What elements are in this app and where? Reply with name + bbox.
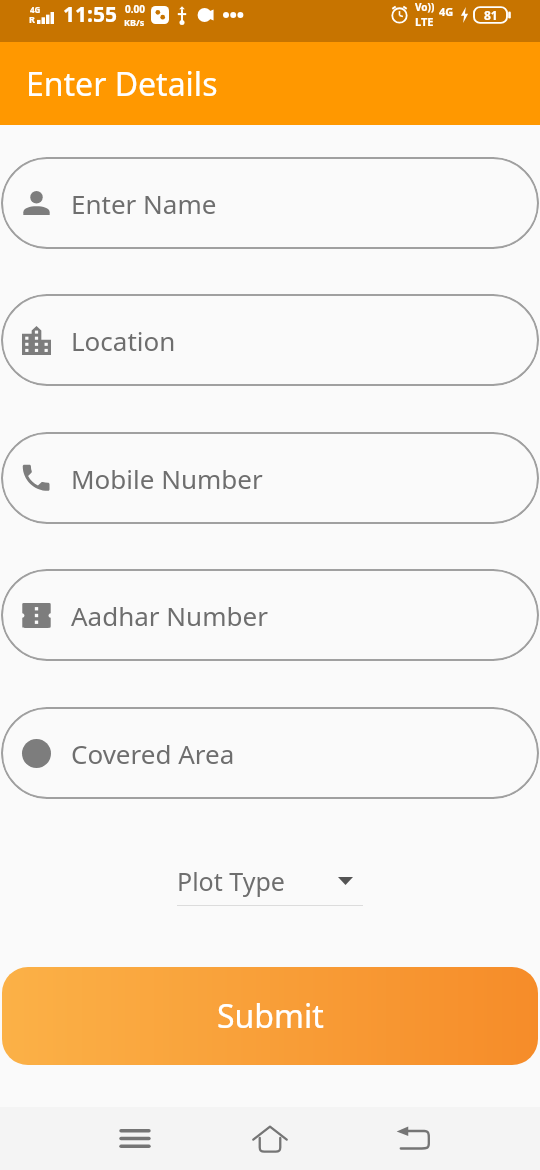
staticText: 81 (484, 7, 498, 23)
button[interactable]: Location (1, 294, 539, 386)
staticText: 11:55 (63, 0, 117, 29)
button[interactable]: Aadhar Number (1, 569, 539, 661)
staticText: Mobile Number (71, 461, 263, 496)
staticText: R (29, 13, 35, 25)
staticText: 0.00 (125, 2, 145, 16)
button[interactable]: Covered Area (1, 707, 539, 799)
staticText: Plot Type (177, 864, 285, 898)
staticText: Covered Area (71, 736, 235, 771)
button[interactable]: Submit (2, 967, 538, 1065)
staticText: Enter Name (71, 186, 217, 221)
staticText: KB/s (124, 16, 145, 28)
button[interactable]: Mobile Number (1, 432, 539, 524)
staticText: 4G (30, 4, 41, 15)
button[interactable]: Back (373, 1107, 453, 1170)
button[interactable]: Recent apps (95, 1107, 175, 1170)
staticText: LTE (415, 14, 434, 29)
button[interactable]: Home (230, 1107, 310, 1170)
button[interactable]: Plot Type (177, 856, 363, 906)
staticText: Submit (217, 994, 324, 1038)
staticText: Enter Details (26, 62, 218, 106)
button[interactable]: Enter Name (1, 157, 539, 249)
staticText: Vo)) (415, 0, 435, 14)
staticText: Aadhar Number (71, 598, 268, 633)
staticText: 4G (439, 4, 454, 19)
staticText: Location (71, 323, 176, 358)
